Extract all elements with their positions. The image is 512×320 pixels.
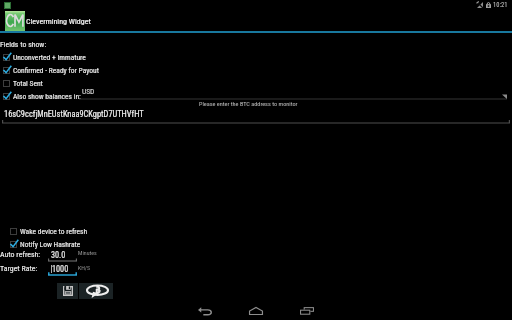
button[interactable]: Back bbox=[192, 303, 218, 319]
button[interactable]: Total Sent bbox=[3, 79, 43, 88]
staticText: Also show balances in: bbox=[13, 92, 81, 101]
staticText: 10:21 bbox=[493, 1, 508, 9]
staticText: Auto refresh: bbox=[0, 250, 41, 259]
button[interactable]: Save settings bbox=[57, 283, 78, 299]
button[interactable]: Home bbox=[243, 303, 269, 319]
staticText: Confirmed - Ready for Payout bbox=[13, 66, 99, 75]
button[interactable]: Donate Bitcoin bbox=[79, 283, 113, 299]
button[interactable]: Notify Low Hashrate bbox=[10, 240, 81, 249]
button[interactable]: Wake device to refresh bbox=[10, 227, 88, 236]
staticText: Target Rate: bbox=[0, 264, 38, 273]
staticText: Clevermining Widget bbox=[26, 17, 91, 26]
staticText: KH/S bbox=[78, 265, 91, 272]
staticText: 30.0 bbox=[51, 250, 66, 260]
staticText: Minutes bbox=[78, 250, 97, 257]
staticText: Fields to show: bbox=[0, 40, 47, 49]
button[interactable]: Unconverted + Immature bbox=[3, 53, 86, 62]
button[interactable]: Recent apps bbox=[294, 303, 320, 319]
button[interactable]: Also show balances in: bbox=[3, 92, 81, 101]
staticText: Wake device to refresh bbox=[20, 227, 88, 236]
button[interactable]: Confirmed - Ready for Payout bbox=[3, 66, 99, 75]
staticText: 16sC9ccfjMnEUstKnaa9CKgptD7UTHVfHT bbox=[4, 109, 144, 119]
staticText: USD bbox=[82, 87, 95, 96]
staticText: 1000 bbox=[52, 264, 69, 274]
staticText: Total Sent bbox=[13, 79, 43, 88]
staticText: Notify Low Hashrate bbox=[20, 240, 81, 249]
staticText: Please enter the BTC address to monitor bbox=[199, 100, 298, 107]
staticText: Unconverted + Immature bbox=[13, 53, 86, 62]
